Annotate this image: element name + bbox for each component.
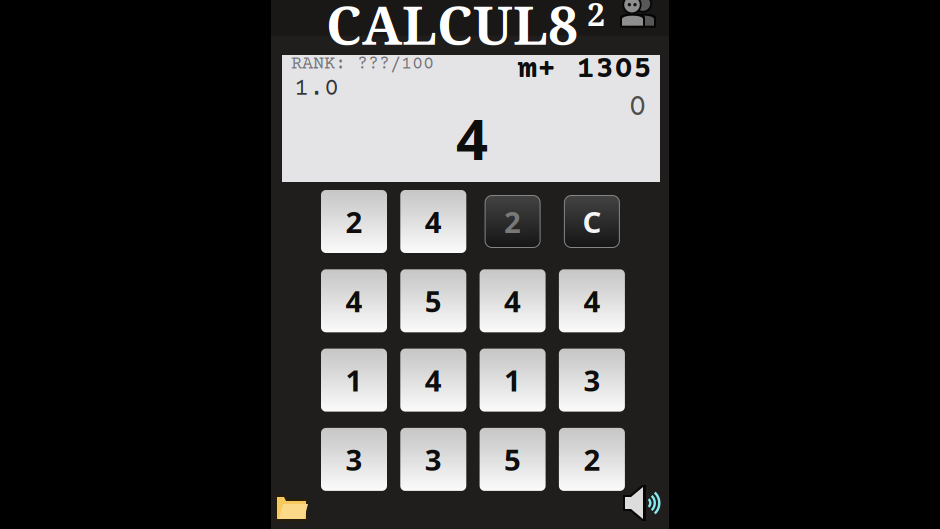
staticText: 4 — [345, 281, 362, 320]
staticText: 5 — [425, 281, 442, 320]
staticText: 3 — [345, 440, 362, 479]
button[interactable]: Saved games — [275, 493, 313, 525]
button[interactable]: 1 — [480, 349, 546, 412]
staticText: 2 — [583, 440, 600, 479]
staticText: CALCUL8 — [326, 0, 578, 60]
button[interactable]: 5 — [400, 269, 466, 332]
button[interactable]: 4 — [400, 349, 466, 412]
staticText: 3 — [425, 440, 442, 479]
button[interactable]: 3 — [321, 428, 387, 491]
button[interactable]: Sound — [623, 486, 665, 522]
button[interactable]: C — [559, 190, 625, 253]
button[interactable]: 2 — [559, 428, 625, 491]
button[interactable]: Multiplayer — [619, 0, 659, 32]
staticText: 2 — [587, 0, 605, 35]
staticText: 1 — [504, 361, 521, 400]
button[interactable]: 3 — [559, 349, 625, 412]
staticText: RANK: ???/100 — [291, 54, 434, 75]
staticText: 4 — [425, 361, 442, 400]
button[interactable]: 2 — [321, 190, 387, 253]
button[interactable]: 3 — [400, 428, 466, 491]
staticText: 4 — [456, 101, 488, 175]
staticText: 1.0 — [294, 75, 339, 103]
staticText: 2 — [504, 202, 521, 241]
staticText: 1 — [345, 361, 362, 400]
button[interactable]: 5 — [480, 428, 546, 491]
button[interactable]: 4 — [559, 269, 625, 332]
staticText: 2 — [345, 202, 362, 241]
button[interactable]: 4 — [480, 269, 546, 332]
staticText: 4 — [504, 281, 521, 320]
staticText: m+ — [518, 52, 556, 88]
staticText: 4 — [583, 281, 600, 320]
button[interactable]: 4 — [400, 190, 466, 253]
staticText: C — [582, 202, 601, 241]
staticText: 4 — [425, 202, 442, 241]
staticText: 3 — [583, 361, 600, 400]
staticText: 1305 — [576, 52, 652, 88]
button[interactable]: 1 — [321, 349, 387, 412]
staticText: 0 — [628, 90, 647, 126]
button[interactable]: 4 — [321, 269, 387, 332]
button[interactable]: 2 — [480, 190, 546, 253]
staticText: 5 — [504, 440, 521, 479]
